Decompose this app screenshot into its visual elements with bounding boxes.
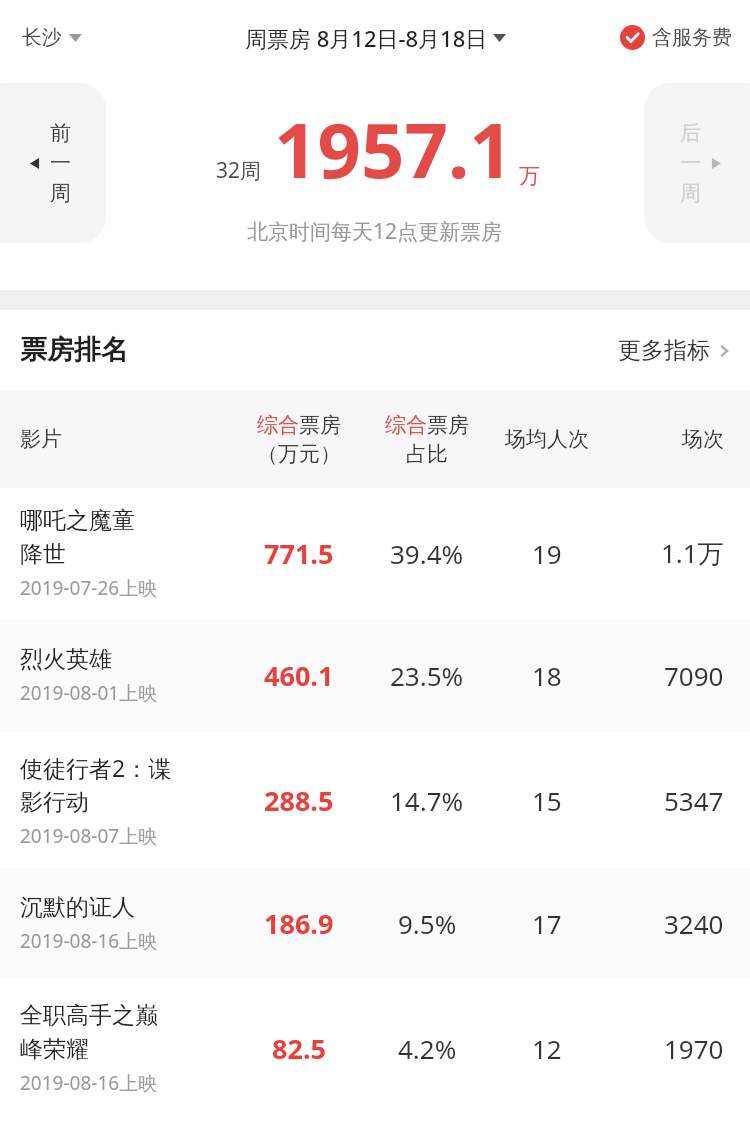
staticText: 综合票房 <box>385 412 469 438</box>
staticText: 场均人次 <box>505 426 589 452</box>
staticText: 12 <box>532 1031 562 1066</box>
staticText: 烈火英雄 <box>20 645 112 674</box>
staticText: （万元） <box>257 441 341 467</box>
staticText: 沉默的证人 <box>20 893 135 922</box>
staticText: 综合票房 <box>257 412 341 438</box>
button[interactable]: 含服务费已选中 <box>616 19 736 56</box>
staticText: 更多指标 <box>618 336 710 365</box>
staticText: 后 <box>680 120 701 146</box>
staticText: 含服务费 <box>652 25 732 50</box>
staticText: 长沙 <box>22 25 62 50</box>
staticText: 哪吒之魔童 降世 <box>20 506 135 569</box>
staticText: 14.7% <box>390 783 464 818</box>
staticText: 4.2% <box>398 1031 457 1066</box>
staticText: 32周 <box>216 156 262 185</box>
staticText: 影片 <box>20 426 62 452</box>
staticText: 周 <box>680 180 701 206</box>
staticText: 15 <box>532 783 562 818</box>
staticText: 北京时间每天12点更新票房 <box>247 217 503 246</box>
staticText: 39.4% <box>390 536 464 571</box>
staticText: 23.5% <box>390 658 464 693</box>
staticText: 场次 <box>682 426 724 452</box>
button[interactable]: 更多指标 <box>614 330 736 371</box>
staticText: 3240 <box>664 906 724 941</box>
button[interactable]: 后 <box>644 83 750 243</box>
staticText: 2019-07-26上映 <box>20 575 158 601</box>
staticText: 771.5 <box>264 535 334 572</box>
staticText: 票房排名 <box>20 333 128 367</box>
staticText: 9.5% <box>398 906 457 941</box>
staticText: 460.1 <box>264 657 334 694</box>
button[interactable]: 哪吒之魔童 降世 <box>0 488 750 618</box>
staticText: 5347 <box>664 783 724 818</box>
staticText: 186.9 <box>264 905 334 942</box>
staticText: 2019-08-07上映 <box>20 823 158 849</box>
staticText: 一 <box>50 150 71 176</box>
staticText: 1957.1 <box>274 97 513 201</box>
button[interactable]: 长沙 <box>18 19 86 56</box>
staticText: 2019-08-01上映 <box>20 680 158 706</box>
staticText: 一 <box>680 150 701 176</box>
button[interactable]: 周票房 8月12日-8月18日 <box>241 17 510 59</box>
staticText: 周 <box>50 180 71 206</box>
staticText: 全职高手之巅 峰荣耀 <box>20 1001 158 1064</box>
staticText: 82.5 <box>272 1030 326 1067</box>
staticText: 18 <box>532 658 562 693</box>
staticText: 2019-08-16上映 <box>20 1070 158 1096</box>
staticText: 2019-08-16上映 <box>20 928 158 954</box>
staticText: 17 <box>532 906 562 941</box>
button[interactable]: 前 <box>0 83 106 243</box>
staticText: 1970 <box>664 1031 724 1066</box>
staticText: 占比 <box>406 441 448 467</box>
button[interactable]: 沉默的证人 <box>0 868 750 978</box>
button[interactable]: 烈火英雄 <box>0 618 750 732</box>
button[interactable]: 全职高手之巅 峰荣耀 <box>0 978 750 1119</box>
staticText: 19 <box>532 536 562 571</box>
staticText: 288.5 <box>264 782 334 819</box>
button[interactable]: 使徒行者2：谍 影行动 <box>0 732 750 868</box>
other: 含服务费已选中 <box>620 25 645 50</box>
staticText: 使徒行者2：谍 影行动 <box>20 752 172 817</box>
staticText: 7090 <box>664 658 724 693</box>
staticText: 前 <box>50 120 71 146</box>
staticText: 万 <box>519 163 540 189</box>
staticText: 周票房 8月12日-8月18日 <box>245 23 488 53</box>
staticText: 1.1万 <box>661 535 724 571</box>
